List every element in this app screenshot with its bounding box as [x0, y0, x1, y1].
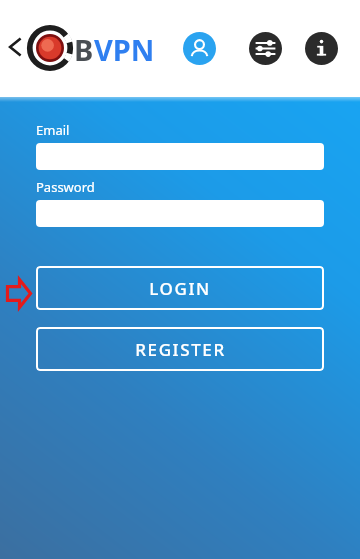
staticText: VPN — [94, 30, 155, 69]
staticText: Password — [36, 178, 95, 196]
button[interactable]: REGISTER — [36, 327, 324, 371]
button[interactable]: Settings — [249, 32, 282, 65]
button[interactable] — [36, 143, 324, 170]
staticText: B — [74, 30, 94, 69]
staticText: Email — [36, 121, 70, 139]
button[interactable]: Account — [183, 32, 216, 65]
button[interactable]: Back — [2, 32, 32, 62]
staticText: LOGIN — [149, 277, 211, 300]
staticText: REGISTER — [135, 338, 226, 361]
button[interactable]: LOGIN — [36, 266, 324, 310]
button[interactable] — [36, 200, 324, 227]
button[interactable]: Information — [305, 32, 338, 65]
